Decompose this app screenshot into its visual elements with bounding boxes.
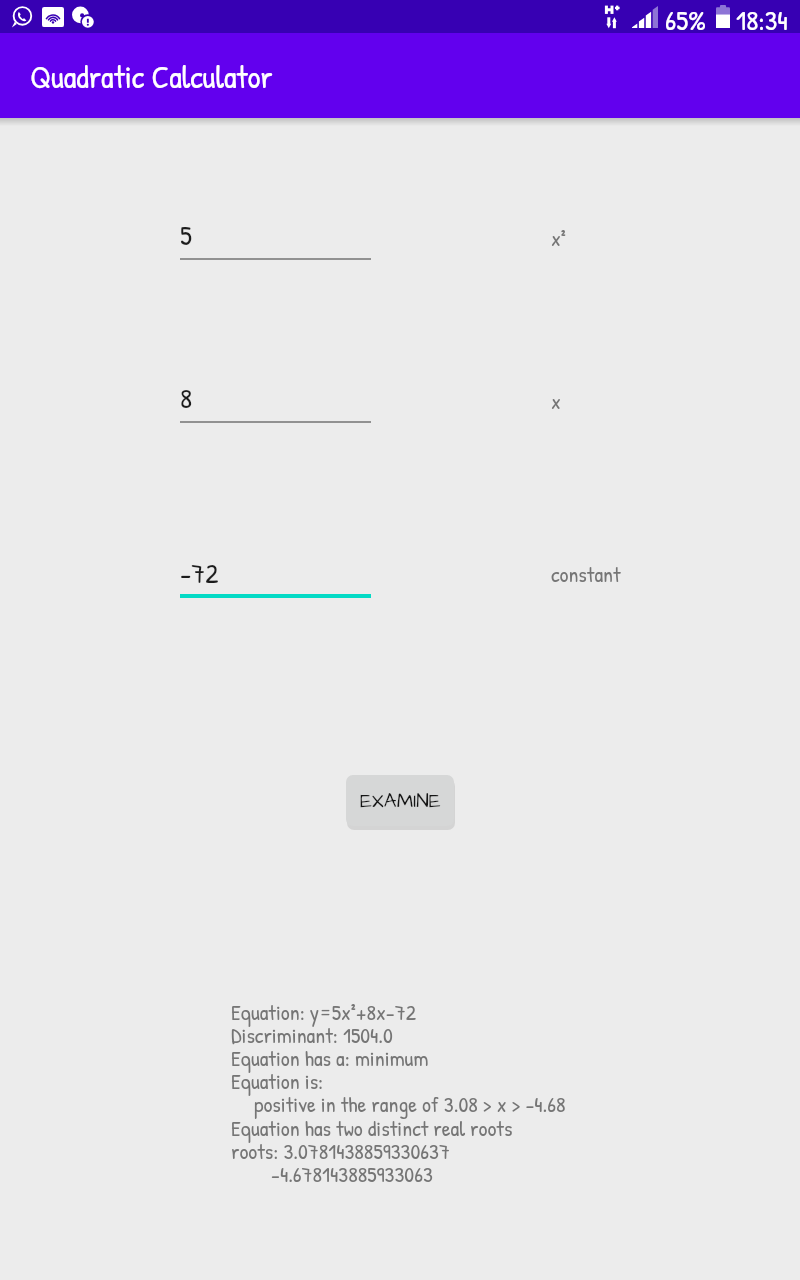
staticText: constant [551, 559, 621, 589]
other: WhatsApp [11, 6, 33, 28]
button[interactable]: -72 [180, 548, 371, 598]
staticText: Equation: y=5x²+8x-72 [231, 997, 416, 1027]
staticText: positive in the range of 3.08 > x > -4.6… [254, 1089, 566, 1119]
staticText: -72 [180, 554, 219, 592]
button[interactable]: EXAMINE [346, 775, 454, 826]
staticText: -4.678143885933063 [271, 1159, 433, 1189]
staticText: x [551, 386, 561, 416]
staticText: Equation has a: minimum [231, 1043, 429, 1073]
staticText: EXAMINE [360, 787, 441, 815]
staticText: Equation has two distinct real roots [231, 1113, 513, 1143]
staticText: 8 [180, 379, 193, 417]
other: Wi-Fi [42, 6, 64, 28]
button[interactable]: 5 [180, 212, 371, 260]
staticText: roots: 3.0781438859330637 [231, 1136, 450, 1166]
staticText: 5 [180, 216, 192, 254]
staticText: 18:34 [736, 1, 788, 34]
other: Notification [72, 6, 94, 28]
staticText: Equation is: [231, 1066, 324, 1096]
staticText: x² [551, 223, 566, 253]
staticText: 65% [665, 1, 707, 34]
button[interactable]: 8 [180, 375, 371, 423]
staticText: Discriminant: 1504.0 [231, 1020, 393, 1050]
staticText: Quadratic Calculator [30, 55, 273, 98]
